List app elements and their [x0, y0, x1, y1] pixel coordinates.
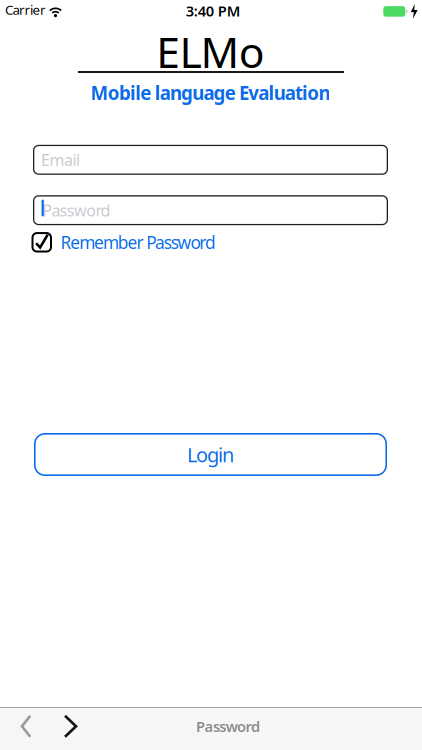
staticText: Password: [196, 717, 260, 736]
staticText: Email: [41, 149, 80, 170]
button[interactable]: [55, 708, 85, 744]
staticText: Carrier: [5, 1, 46, 18]
staticText: ELMo: [156, 23, 265, 80]
staticText: Remember Password: [60, 231, 216, 254]
button[interactable]: [11, 708, 41, 744]
staticText: Login: [187, 441, 234, 468]
button[interactable]: Remember Password: [31, 231, 241, 254]
staticText: Mobile language Evaluation: [91, 80, 330, 105]
staticText: 3:40 PM: [186, 1, 241, 20]
staticText: Password: [42, 200, 111, 221]
button[interactable]: Email: [33, 145, 388, 175]
button[interactable]: Password: [33, 195, 388, 225]
button[interactable]: Login: [34, 433, 387, 476]
